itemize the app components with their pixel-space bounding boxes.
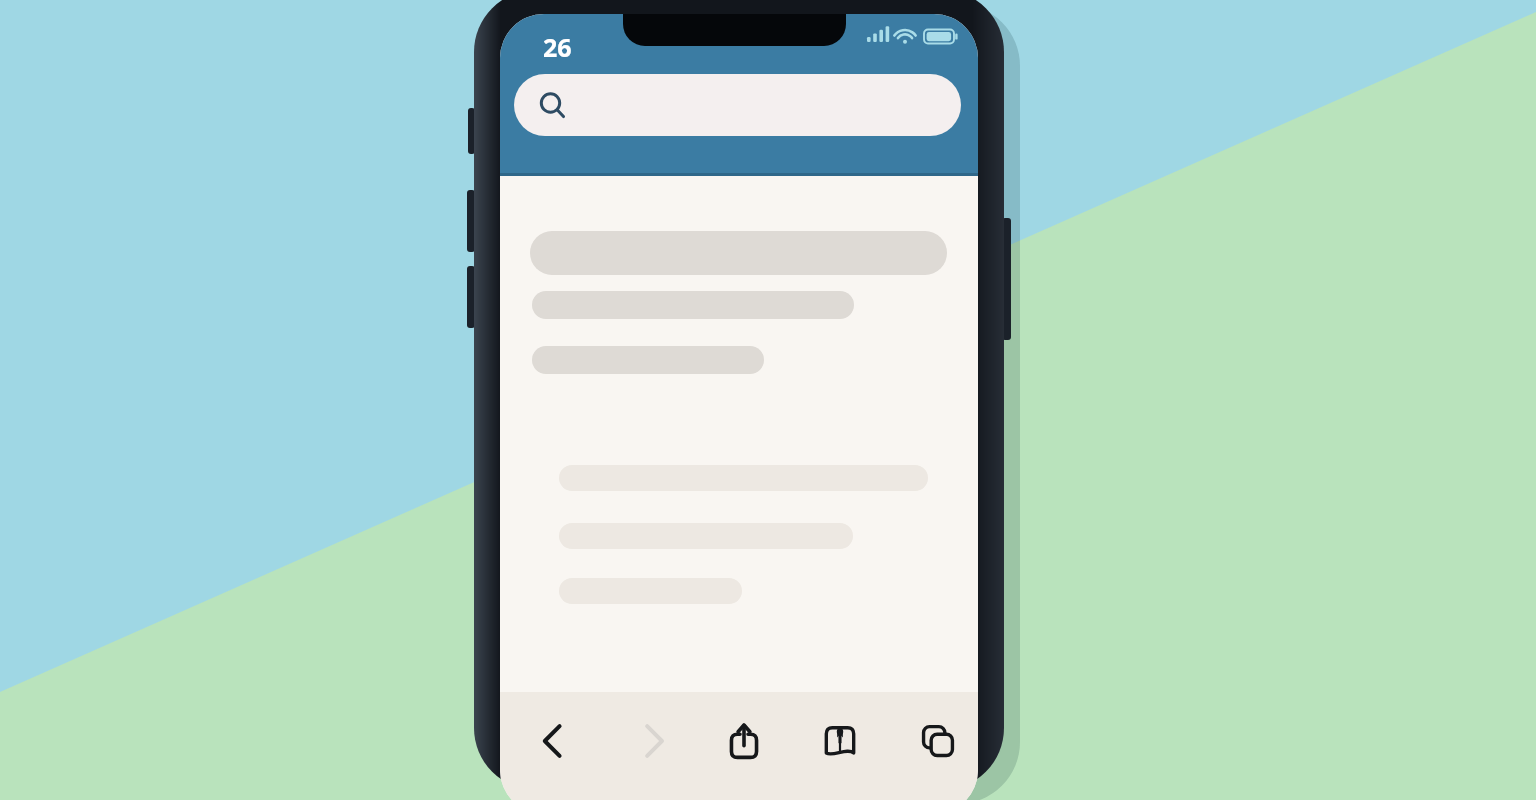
button[interactable]: Search or enter website name: [514, 74, 961, 136]
button[interactable]: Share: [712, 712, 774, 768]
button[interactable]: Forward: [622, 712, 684, 768]
staticText: 26: [543, 30, 572, 64]
button[interactable]: Tabs: [906, 712, 968, 768]
button[interactable]: Back: [520, 712, 582, 768]
button[interactable]: Bookmarks: [808, 712, 870, 768]
